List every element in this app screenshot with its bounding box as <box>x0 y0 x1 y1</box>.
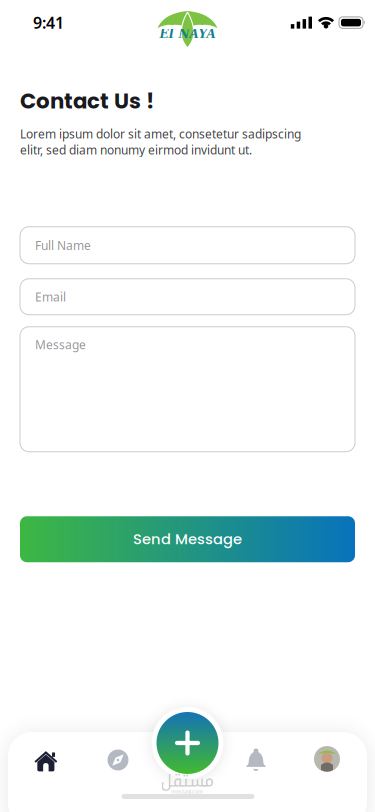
staticText: مستقل <box>160 765 214 797</box>
staticText: Contact Us ! <box>20 86 154 116</box>
button[interactable]: Notifications <box>245 748 266 771</box>
staticText: Message <box>35 337 86 353</box>
button[interactable]: Add <box>151 707 223 779</box>
staticText: EI NAYA <box>159 27 215 41</box>
button[interactable]: Profile <box>314 746 340 772</box>
button[interactable]: Message <box>20 327 355 452</box>
button[interactable]: Explore <box>107 749 129 771</box>
staticText: mostaql.com <box>171 788 203 795</box>
staticText: Lorem ipsum dolor sit amet, consetetur s… <box>20 126 301 158</box>
staticText: 9:41 <box>33 12 64 33</box>
staticText: Email <box>35 289 66 305</box>
button[interactable]: Home <box>34 750 58 772</box>
button[interactable]: Full Name <box>20 227 355 264</box>
staticText: Send Message <box>133 529 242 549</box>
button[interactable]: Email <box>20 279 355 315</box>
staticText: Full Name <box>35 237 91 253</box>
button[interactable]: Send Message <box>20 516 355 562</box>
